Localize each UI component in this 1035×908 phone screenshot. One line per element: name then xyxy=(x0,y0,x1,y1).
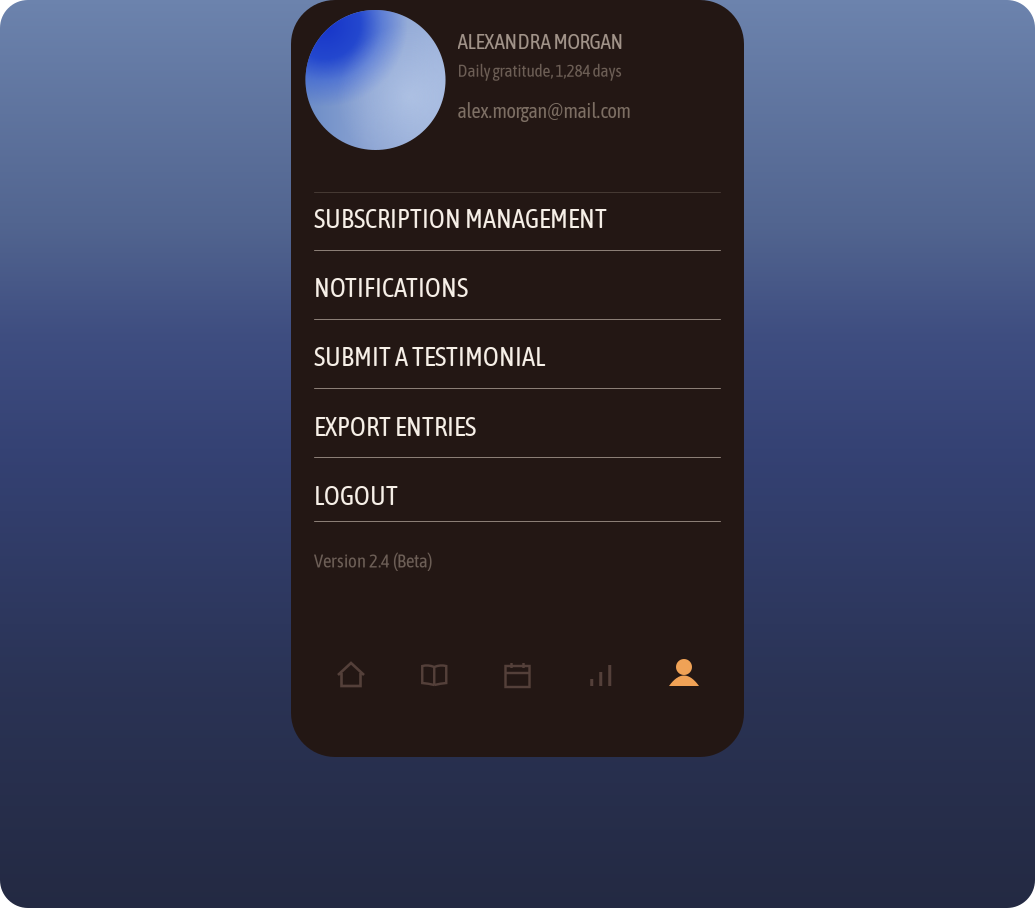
button[interactable]: Insights xyxy=(497,655,537,695)
button[interactable]: LOGOUT xyxy=(314,458,721,522)
staticText: Daily gratitude, 1,284 days xyxy=(457,60,621,80)
staticText: SUBMIT A TESTIMONIAL xyxy=(314,341,545,372)
button[interactable]: Journal xyxy=(414,655,454,695)
staticText: ALEXANDRA MORGAN xyxy=(457,29,623,53)
button[interactable]: SUBMIT A TESTIMONIAL xyxy=(314,320,721,389)
button[interactable]: Home xyxy=(331,655,371,695)
button[interactable]: Stats xyxy=(581,655,621,695)
staticText: Version 2.4 (Beta) xyxy=(314,550,432,571)
staticText: SUBSCRIPTION MANAGEMENT xyxy=(314,203,607,234)
button[interactable]: Profile photo xyxy=(305,10,445,150)
staticText: NOTIFICATIONS xyxy=(314,272,468,303)
staticText: LOGOUT xyxy=(314,480,398,511)
button[interactable]: Profile xyxy=(664,655,704,695)
staticText: alex.morgan@mail.com xyxy=(457,99,630,122)
button[interactable]: SUBSCRIPTION MANAGEMENT xyxy=(314,193,721,251)
staticText: EXPORT ENTRIES xyxy=(314,411,476,442)
button[interactable]: EXPORT ENTRIES xyxy=(314,389,721,458)
button[interactable]: NOTIFICATIONS xyxy=(314,251,721,320)
